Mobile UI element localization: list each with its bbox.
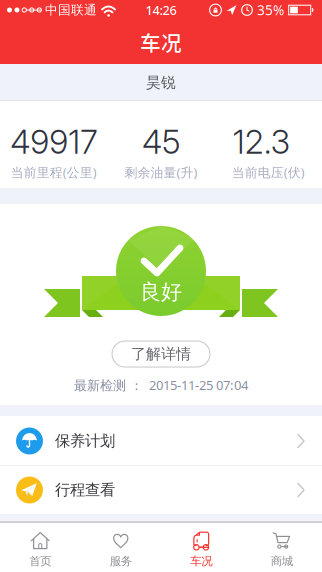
staticText: 昊锐 (146, 73, 176, 92)
staticText: 12.3 (233, 122, 290, 161)
staticText: 中国联通 (45, 2, 97, 18)
button[interactable]: 行程查看 (0, 466, 322, 514)
button[interactable]: 服务 (80, 522, 161, 568)
staticText: 首页 (29, 554, 51, 568)
staticText: 服务 (110, 554, 132, 568)
staticText: 车况 (190, 554, 212, 568)
staticText: 35% (257, 1, 284, 19)
staticText: 剩余油量(升) (124, 163, 197, 181)
staticText: 良好 (140, 279, 182, 305)
button[interactable]: 保养计划 (0, 416, 322, 466)
staticText: 车况 (140, 27, 182, 57)
button[interactable]: 商城 (241, 522, 322, 568)
button[interactable]: 了解详情 (111, 340, 210, 367)
staticText: 最新检测 ： 2015-11-25 07:04 (74, 376, 248, 394)
button[interactable]: 首页 (0, 522, 80, 568)
staticText: 保养计划 (55, 431, 115, 451)
staticText: 商城 (271, 554, 293, 568)
staticText: 行程查看 (55, 480, 115, 500)
staticText: 45 (142, 122, 180, 161)
staticText: 当前里程(公里) (11, 163, 97, 181)
staticText: 当前电压(伏) (232, 163, 305, 181)
staticText: 了解详情 (131, 344, 191, 363)
button[interactable]: 车况 (161, 522, 241, 568)
staticText: 49917 (10, 122, 97, 161)
staticText: 14:26 (145, 1, 176, 19)
